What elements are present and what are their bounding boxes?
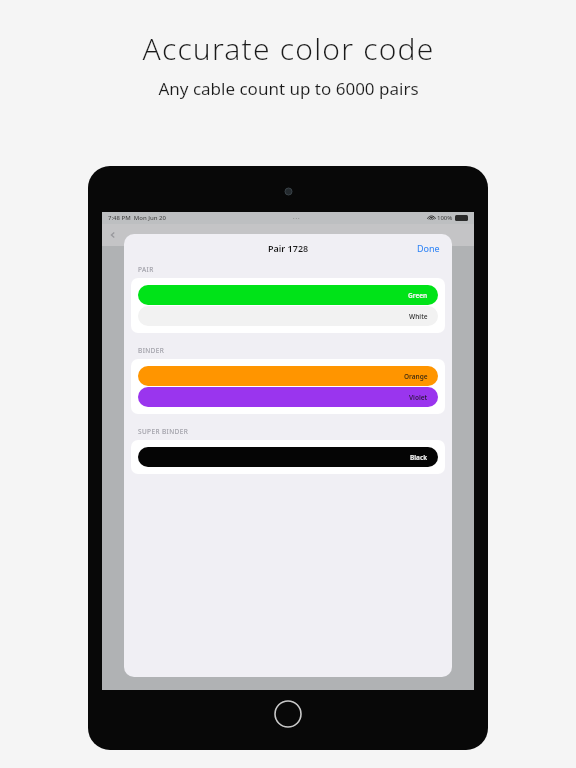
button[interactable]: Black bbox=[138, 447, 438, 467]
staticText: 7:48 PM Mon Jun 20 bbox=[108, 214, 166, 222]
staticText: Green bbox=[408, 291, 428, 300]
staticText: Violet bbox=[409, 393, 428, 402]
staticText: SUPER BINDER bbox=[138, 427, 189, 436]
button[interactable]: Orange bbox=[138, 366, 438, 386]
button[interactable]: Done bbox=[405, 237, 452, 259]
staticText: Done bbox=[417, 242, 440, 254]
staticText: Black bbox=[410, 453, 428, 462]
staticText: White bbox=[409, 312, 428, 321]
button[interactable]: Violet bbox=[138, 387, 438, 407]
staticText: Orange bbox=[404, 372, 428, 381]
staticText: PAIR bbox=[138, 265, 154, 274]
button[interactable]: Home bbox=[274, 700, 302, 728]
staticText: Accurate color code bbox=[142, 28, 435, 69]
staticText: Any cable count up to 6000 pairs bbox=[158, 77, 419, 100]
staticText: • • • bbox=[293, 216, 300, 221]
staticText: BINDER bbox=[138, 346, 165, 355]
staticText: 100% bbox=[437, 214, 453, 222]
button[interactable]: Green bbox=[138, 285, 438, 305]
button[interactable]: White bbox=[138, 306, 438, 326]
staticText: Pair 1728 bbox=[268, 242, 309, 254]
